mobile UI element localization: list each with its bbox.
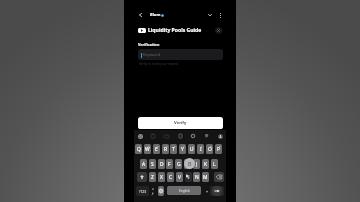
- button[interactable]: G: [175, 159, 182, 169]
- staticText: Verify: [174, 120, 187, 126]
- button[interactable]: N: [193, 172, 200, 182]
- staticText: D: [160, 161, 164, 168]
- button[interactable]: enter: [210, 186, 224, 196]
- staticText: 2: [148, 144, 150, 147]
- staticText: Liquidity Pools Guide: [148, 27, 202, 34]
- button[interactable]: Voice input: [216, 132, 224, 140]
- staticText: G: [177, 161, 181, 168]
- button[interactable]: Z: [149, 172, 156, 182]
- staticText: B: [187, 174, 191, 181]
- staticText: Q: [137, 146, 141, 153]
- button[interactable]: B: [185, 172, 192, 182]
- button[interactable]: K: [202, 159, 209, 169]
- staticText: I: [200, 146, 202, 153]
- button[interactable]: T: [170, 144, 177, 154]
- staticText: Blum: [150, 12, 161, 17]
- button[interactable]: Settings: [189, 132, 197, 140]
- button[interactable]: X: [158, 172, 165, 182]
- staticText: 8: [201, 144, 203, 147]
- staticText: R: [164, 146, 168, 153]
- staticText: ?123: [139, 189, 147, 193]
- button[interactable]: S: [149, 159, 156, 169]
- button[interactable]: More options: [215, 10, 225, 20]
- button[interactable]: Clipboard: [149, 132, 157, 140]
- staticText: F: [168, 161, 171, 168]
- button[interactable]: H: [184, 159, 191, 169]
- button[interactable]: Y: [179, 144, 186, 154]
- staticText: L: [213, 161, 216, 168]
- staticText: Y: [181, 146, 184, 153]
- button[interactable]: C: [167, 172, 174, 182]
- button[interactable]: Gboard menu: [136, 132, 144, 140]
- staticText: 3: [157, 144, 159, 147]
- button[interactable]: Verify: [138, 117, 223, 129]
- button[interactable]: Close: [215, 27, 222, 34]
- staticText: S: [151, 161, 154, 168]
- staticText: B: [188, 160, 192, 167]
- button[interactable]: Stickers: [203, 132, 211, 140]
- button[interactable]: R: [162, 144, 169, 154]
- button[interactable]: English: [167, 186, 201, 195]
- staticText: X: [160, 174, 163, 181]
- staticText: E: [155, 146, 158, 153]
- staticText: V: [178, 174, 181, 181]
- staticText: M: [203, 174, 208, 181]
- staticText: 7: [192, 144, 194, 147]
- staticText: O: [208, 146, 212, 153]
- staticText: K: [204, 161, 208, 168]
- button[interactable]: Back: [136, 11, 144, 19]
- button[interactable]: shift: [137, 172, 147, 182]
- staticText: U: [190, 146, 194, 153]
- staticText: 5: [174, 144, 176, 147]
- staticText: H: [186, 161, 190, 168]
- staticText: P: [217, 146, 220, 153]
- button[interactable]: E: [153, 144, 160, 154]
- staticText: Z: [151, 174, 154, 181]
- button[interactable]: M: [202, 172, 209, 182]
- staticText: 4: [166, 144, 168, 147]
- button[interactable]: D: [158, 159, 165, 169]
- button[interactable]: Translate: [176, 132, 184, 140]
- button[interactable]: U: [188, 144, 195, 154]
- staticText: Keyword: [143, 52, 161, 58]
- staticText: A: [142, 161, 146, 168]
- staticText: 9: [210, 144, 212, 147]
- button[interactable]: O: [206, 144, 213, 154]
- button[interactable]: I: [197, 144, 204, 154]
- button[interactable]: Keyword: [138, 49, 223, 60]
- staticText: T: [172, 146, 175, 153]
- staticText: 6: [183, 144, 185, 147]
- button[interactable]: Expand chat: [205, 10, 215, 20]
- staticText: Verification: [138, 42, 160, 47]
- button[interactable]: F: [166, 159, 173, 169]
- button[interactable]: globe: [158, 186, 164, 196]
- button[interactable]: Q: [135, 144, 142, 154]
- button[interactable]: P: [215, 144, 222, 154]
- staticText: 1: [139, 144, 141, 147]
- button[interactable]: ?123: [136, 186, 149, 196]
- button[interactable]: J: [193, 159, 200, 169]
- staticText: N: [195, 174, 199, 181]
- button[interactable]: L: [211, 159, 218, 169]
- button[interactable]: V: [176, 172, 183, 182]
- staticText: Verify to claim your reward: [139, 62, 178, 66]
- staticText: J: [196, 161, 198, 168]
- staticText: C: [169, 174, 173, 181]
- staticText: 0: [219, 144, 221, 147]
- button[interactable]: del: [214, 172, 224, 182]
- staticText: W: [145, 146, 150, 153]
- button[interactable]: W: [144, 144, 151, 154]
- staticText: English: [179, 189, 190, 193]
- button[interactable]: GIF: [162, 132, 170, 140]
- button[interactable]: A: [140, 159, 147, 169]
- button[interactable]: comma: [150, 186, 156, 196]
- button[interactable]: period: [204, 186, 210, 196]
